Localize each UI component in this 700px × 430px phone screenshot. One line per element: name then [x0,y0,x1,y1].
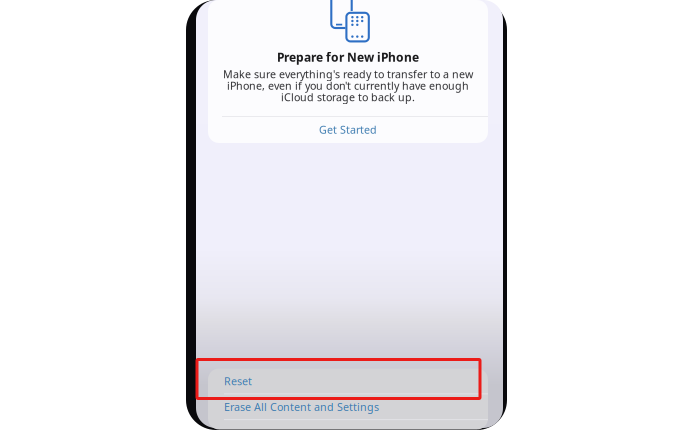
staticText: iCloud storage to back up. [281,90,415,104]
button[interactable]: Erase All Content and Settings [208,394,488,419]
staticText: Make sure everything's ready to transfer… [223,67,473,81]
staticText: Erase All Content and Settings [224,400,379,414]
button[interactable]: Get Started [208,116,488,143]
button[interactable] [208,420,488,430]
staticText: iPhone, even if you don't currently have… [227,78,469,93]
staticText: Get Started [319,122,377,137]
staticText: Reset [224,374,252,388]
button[interactable]: Reset [208,368,488,393]
staticText: Prepare for New iPhone [277,49,419,65]
